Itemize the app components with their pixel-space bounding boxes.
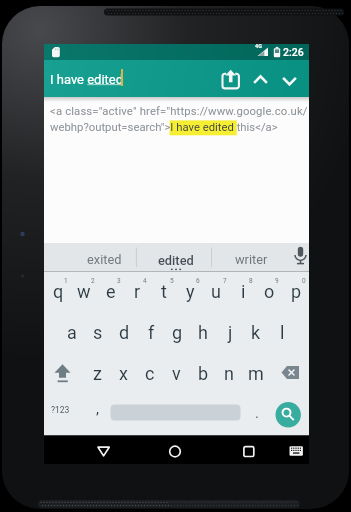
button[interactable]: t bbox=[151, 275, 177, 307]
button[interactable]: u bbox=[203, 275, 229, 307]
button[interactable]: j bbox=[217, 316, 243, 348]
staticText: 3 bbox=[117, 277, 121, 285]
staticText: c bbox=[145, 363, 155, 384]
button[interactable] bbox=[161, 438, 188, 465]
staticText: y bbox=[186, 281, 195, 302]
button[interactable]: f bbox=[138, 316, 164, 348]
staticText: r bbox=[134, 281, 141, 302]
staticText: 2 bbox=[91, 277, 95, 285]
button[interactable]: p bbox=[283, 275, 309, 307]
button[interactable]: o bbox=[256, 275, 282, 307]
button[interactable]: r bbox=[124, 275, 150, 307]
staticText: 4 bbox=[143, 277, 147, 285]
button[interactable]: n bbox=[216, 357, 242, 389]
button[interactable]: , bbox=[88, 394, 106, 424]
button[interactable]: edited bbox=[144, 247, 208, 273]
button[interactable] bbox=[288, 244, 312, 270]
button[interactable]: e bbox=[98, 275, 124, 307]
button[interactable]: a bbox=[59, 316, 85, 348]
button[interactable]: m bbox=[243, 357, 269, 389]
button[interactable]: l bbox=[269, 316, 295, 348]
button[interactable]: q bbox=[45, 275, 71, 307]
button[interactable] bbox=[276, 356, 306, 386]
button[interactable] bbox=[277, 68, 302, 93]
staticText: q bbox=[53, 281, 64, 302]
staticText: s bbox=[93, 322, 103, 343]
staticText: g bbox=[172, 322, 183, 343]
staticText: j bbox=[228, 322, 233, 343]
staticText: i bbox=[241, 281, 246, 302]
staticText: w bbox=[77, 281, 91, 302]
button[interactable]: z bbox=[84, 357, 110, 389]
button[interactable]: exited bbox=[73, 246, 135, 273]
staticText: 0 bbox=[302, 277, 306, 285]
staticText: exited bbox=[87, 252, 122, 267]
staticText: writer bbox=[235, 252, 268, 267]
staticText: 4G bbox=[255, 43, 262, 49]
staticText: x bbox=[119, 363, 128, 384]
staticText: I have edited bbox=[50, 72, 124, 87]
staticText: u bbox=[211, 281, 221, 302]
staticText: o bbox=[264, 281, 275, 302]
button[interactable]: v bbox=[163, 357, 189, 389]
staticText: e bbox=[106, 281, 116, 302]
staticText: l bbox=[280, 322, 285, 343]
button[interactable] bbox=[248, 68, 273, 93]
staticText: b bbox=[198, 363, 209, 384]
button[interactable]: d bbox=[111, 316, 137, 348]
staticText: 9 bbox=[275, 277, 279, 285]
staticText: 5 bbox=[170, 277, 174, 285]
staticText: 1 bbox=[64, 277, 68, 285]
staticText: k bbox=[251, 322, 261, 343]
staticText: d bbox=[119, 322, 130, 343]
button[interactable]: i bbox=[230, 275, 256, 307]
staticText: f bbox=[148, 322, 155, 343]
staticText: n bbox=[224, 363, 234, 384]
staticText: webhp?output=search">I have edited this<… bbox=[50, 121, 278, 134]
staticText: . bbox=[255, 404, 259, 422]
button[interactable] bbox=[276, 402, 303, 429]
staticText: 8 bbox=[249, 277, 253, 285]
button[interactable] bbox=[235, 438, 262, 465]
staticText: 2:26 bbox=[283, 46, 304, 58]
button[interactable]: . bbox=[248, 398, 265, 428]
staticText: 7 bbox=[223, 277, 227, 285]
button[interactable]: I have edited bbox=[50, 70, 124, 88]
staticText: t bbox=[161, 281, 167, 302]
staticText: z bbox=[93, 363, 102, 384]
button[interactable] bbox=[111, 405, 241, 421]
button[interactable] bbox=[218, 68, 243, 93]
button[interactable]: k bbox=[243, 316, 269, 348]
staticText: m bbox=[248, 363, 264, 384]
button[interactable] bbox=[90, 438, 117, 465]
button[interactable]: s bbox=[85, 316, 111, 348]
staticText: <a class="active" href="https://www.goog… bbox=[50, 105, 308, 118]
button[interactable]: w bbox=[71, 275, 97, 307]
button[interactable]: writer bbox=[221, 246, 281, 273]
button[interactable]: b bbox=[190, 357, 216, 389]
staticText: h bbox=[198, 322, 208, 343]
staticText: a bbox=[67, 322, 77, 343]
button[interactable] bbox=[283, 440, 309, 463]
button[interactable]: ?123 bbox=[44, 395, 77, 425]
staticText: v bbox=[172, 363, 181, 384]
button[interactable]: c bbox=[137, 357, 163, 389]
button[interactable]: y bbox=[177, 275, 203, 307]
staticText: 6 bbox=[196, 277, 200, 285]
staticText: edited bbox=[158, 253, 194, 268]
staticText: p bbox=[291, 281, 302, 302]
button[interactable]: x bbox=[110, 357, 136, 389]
button[interactable]: g bbox=[164, 316, 190, 348]
button[interactable]: h bbox=[190, 316, 216, 348]
staticText: ?123 bbox=[51, 405, 70, 415]
staticText: , bbox=[96, 400, 99, 418]
button[interactable] bbox=[44, 356, 81, 386]
